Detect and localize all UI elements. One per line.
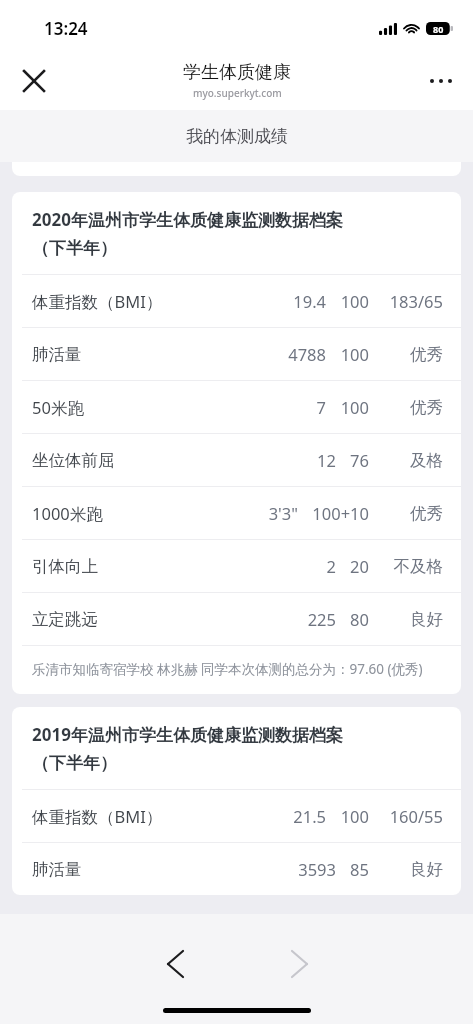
button[interactable]: 2020年温州市学生体质健康监测数据档案 （下半年） [12,192,461,694]
button[interactable]: 体重指数（BMI） [12,790,461,842]
staticText: 3'3" [268,502,298,524]
staticText: 不及格 [393,556,443,577]
staticText: 肺活量 [32,859,82,880]
button[interactable]: 肺活量 [12,843,461,895]
staticText: 优秀 [410,397,443,418]
staticText: 体重指数（BMI） [32,805,163,828]
staticText: 85 [350,858,369,880]
staticText: 2019年温州市学生体质健康监测数据档案 （下半年） [32,723,343,774]
staticText: 3593 [298,858,336,880]
staticText: 21.5 [293,805,326,827]
button[interactable]: 坐位体前屈 [12,434,461,486]
staticText: 100 [340,805,369,827]
staticText: 100 [340,290,369,312]
staticText: 7 [316,396,326,418]
button[interactable]: 体重指数（BMI） [12,275,461,327]
staticText: 225 [307,608,336,630]
staticText: 良好 [410,859,443,880]
staticText: 优秀 [410,344,443,365]
staticText: 20 [350,555,369,577]
staticText: 肺活量 [32,344,82,365]
staticText: 4788 [288,343,326,365]
staticText: 100 [340,343,369,365]
button[interactable]: 50米跑 [12,381,461,433]
button[interactable]: Forward [271,936,327,992]
staticText: 优秀 [410,503,443,524]
staticText: 2 [326,555,336,577]
button[interactable]: Back [147,936,203,992]
button[interactable]: 2019年温州市学生体质健康监测数据档案 （下半年） [12,707,461,895]
staticText: 1000米跑 [32,502,103,525]
button[interactable]: Close [10,57,58,105]
staticText: 立定跳远 [32,609,98,630]
staticText: 100+10 [312,502,369,524]
staticText: 良好 [410,609,443,630]
staticText: 坐位体前屈 [32,450,115,471]
staticText: 76 [350,449,369,471]
button[interactable]: 引体向上 [12,540,461,592]
staticText: 160/55 [389,805,443,827]
staticText: 学生体质健康 [183,61,291,84]
staticText: 183/65 [389,290,443,312]
staticText: 及格 [410,450,443,471]
staticText: 100 [340,396,369,418]
staticText: 引体向上 [32,556,98,577]
staticText: myo.superkyt.com [193,86,282,100]
staticText: 我的体测成绩 [186,126,288,147]
button[interactable]: 肺活量 [12,328,461,380]
staticText: 2020年温州市学生体质健康监测数据档案 （下半年） [32,208,343,259]
staticText: 乐清市知临寄宿学校 林兆赫 同学本次体测的总分为：97.60 (优秀) [32,660,423,678]
staticText: 13:24 [44,17,88,40]
staticText: 80 [433,23,444,35]
button[interactable]: 1000米跑 [12,487,461,539]
staticText: 体重指数（BMI） [32,290,163,313]
staticText: 12 [317,449,336,471]
staticText: 80 [350,608,369,630]
button[interactable]: 立定跳远 [12,593,461,645]
staticText: 19.4 [293,290,326,312]
staticText: 50米跑 [32,396,84,419]
button[interactable]: More options [417,57,465,105]
